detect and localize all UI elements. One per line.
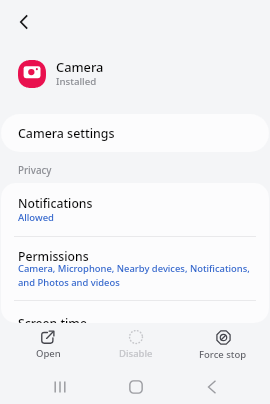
button[interactable]: Back (198, 373, 226, 401)
button[interactable]: Recent apps (46, 373, 74, 401)
staticText: Disable (119, 347, 153, 360)
button[interactable]: Screen time (1, 301, 269, 323)
button[interactable]: Camera settings (1, 114, 269, 152)
staticText: Allowed (18, 211, 54, 224)
staticText: Notifications (18, 195, 93, 212)
button[interactable]: Open (8, 326, 88, 364)
button[interactable]: Disable (96, 326, 176, 364)
staticText: Installed (56, 75, 97, 88)
button[interactable]: Home (122, 373, 150, 401)
staticText: Camera, Microphone, Nearby devices, Noti… (18, 262, 250, 288)
button[interactable]: Permissions (1, 236, 269, 300)
button[interactable]: Force stop (183, 326, 263, 364)
staticText: Permissions (18, 248, 89, 265)
staticText: Camera (56, 58, 104, 75)
staticText: Force stop (199, 348, 247, 361)
staticText: Open (36, 347, 61, 360)
staticText: Screen time (18, 315, 87, 323)
staticText: Camera settings (18, 125, 115, 142)
staticText: Privacy (18, 164, 52, 177)
button[interactable]: Notifications (1, 183, 269, 236)
button[interactable]: Navigate up (10, 8, 38, 36)
